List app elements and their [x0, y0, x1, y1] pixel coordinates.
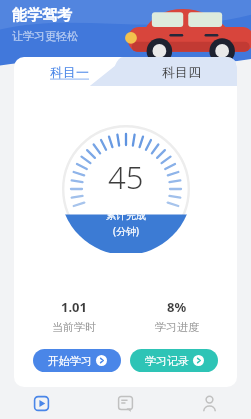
staticText: 8% — [167, 298, 187, 316]
staticText: 45 — [108, 156, 144, 198]
staticText: 科目四 — [162, 64, 201, 80]
staticText: 开始学习 — [48, 354, 92, 368]
staticText: 科目一 — [50, 64, 89, 80]
staticText: 学习进度 — [155, 320, 199, 334]
staticText: 累计完成 — [106, 209, 146, 222]
button[interactable]: 科目一 — [14, 57, 125, 86]
staticText: 学习记录 — [145, 354, 189, 368]
staticText: (分钟) — [113, 224, 139, 238]
button[interactable]: Study — [0, 387, 83, 419]
staticText: 让学习更轻松 — [12, 29, 78, 43]
staticText: 能学驾考 — [12, 6, 72, 25]
button[interactable]: Profile — [167, 387, 251, 419]
button[interactable]: 学习记录 — [130, 349, 218, 372]
staticText: 当前学时 — [52, 320, 96, 334]
button[interactable]: 开始学习 — [33, 349, 121, 372]
button[interactable]: 科目四 — [125, 57, 237, 86]
staticText: 1.01 — [61, 298, 87, 316]
button[interactable]: Messages — [83, 387, 167, 419]
